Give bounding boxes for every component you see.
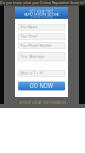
- staticText: GET YOUR FREE: [29, 10, 53, 13]
- staticText: Your Email: [20, 35, 37, 38]
- staticText: SHOW DESKTOP VERSION: [19, 100, 66, 105]
- staticText: GO NOW: [30, 83, 54, 89]
- button[interactable]: GO NOW: [18, 81, 65, 90]
- staticText: What is 7 + 4?: [20, 72, 43, 75]
- button[interactable]: SHOW DESKTOP VERSION: [0, 97, 85, 108]
- staticText: Do you know what your Online Reputation …: [0, 1, 85, 5]
- staticText: CONTACT US NOW: [30, 16, 52, 18]
- staticText: Your Phone Number: [20, 44, 51, 47]
- staticText: REPUTATION SCORE: [24, 12, 59, 17]
- staticText: Your Message: [20, 55, 44, 58]
- staticText: Your Name: [20, 25, 37, 29]
